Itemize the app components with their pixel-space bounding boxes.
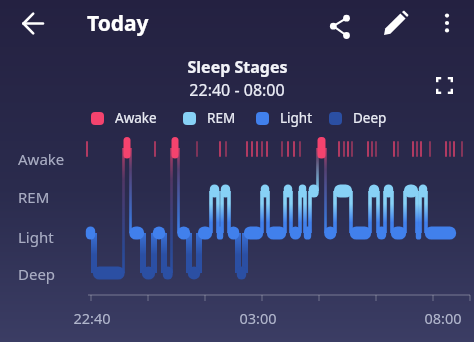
staticText: Deep [18,264,56,284]
staticText: Light [18,227,54,247]
button[interactable]: Awake [91,109,157,127]
staticText: Awake [115,109,157,127]
button[interactable]: REM [183,109,236,127]
staticText: Light [280,109,313,127]
staticText: Sleep Stages [187,56,288,78]
staticText: REM [18,187,50,207]
staticText: 22:40 [73,308,111,328]
button[interactable] [427,68,461,102]
button[interactable] [321,5,358,42]
staticText: REM [207,109,236,127]
staticText: 08:00 [424,308,462,328]
button[interactable] [378,5,414,41]
staticText: 22:40 - 08:00 [189,79,285,101]
staticText: Awake [18,149,65,169]
button[interactable]: Light [256,109,313,127]
staticText: Today [87,9,149,38]
staticText: Deep [353,109,387,127]
button[interactable]: Deep [329,109,387,127]
staticText: 03:00 [239,308,277,328]
button[interactable] [13,3,53,43]
button[interactable]: Today [87,9,149,38]
button[interactable] [429,5,465,41]
